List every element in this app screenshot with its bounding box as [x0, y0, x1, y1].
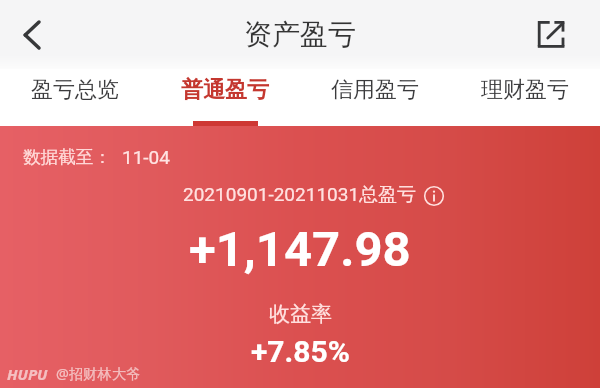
button[interactable]: 盈亏总览	[0, 69, 150, 126]
staticText: 普通盈亏	[181, 76, 269, 104]
staticText: HUPU	[7, 364, 48, 384]
staticText: 收益率	[269, 301, 332, 327]
staticText: +7.85%	[251, 334, 350, 369]
staticText: +1,147.98	[189, 221, 411, 278]
staticText: 信用盈亏	[331, 76, 419, 104]
button[interactable]: Info	[423, 185, 445, 207]
button[interactable]: Share	[538, 0, 600, 69]
staticText: 20210901-20211031总盈亏	[183, 183, 417, 207]
staticText: 资产盈亏	[244, 17, 356, 52]
button[interactable]: Back	[0, 0, 58, 69]
staticText: @招财林大爷	[56, 364, 141, 384]
staticText: 数据截至：	[23, 146, 111, 168]
staticText: 盈亏总览	[31, 76, 119, 104]
button[interactable]: 信用盈亏	[300, 69, 450, 126]
staticText: 11-04	[122, 146, 170, 168]
button[interactable]: 理财盈亏	[450, 69, 600, 126]
staticText: 理财盈亏	[481, 76, 569, 104]
button[interactable]: 普通盈亏	[150, 69, 300, 126]
